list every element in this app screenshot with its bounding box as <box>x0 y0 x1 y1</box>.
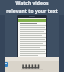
staticText: Watch videos <box>15 0 49 7</box>
button[interactable]: Watch videos <box>0 0 64 15</box>
button[interactable]: App icon <box>3 62 8 67</box>
button[interactable] <box>17 15 47 57</box>
staticText: relevant to your text <box>6 8 58 15</box>
